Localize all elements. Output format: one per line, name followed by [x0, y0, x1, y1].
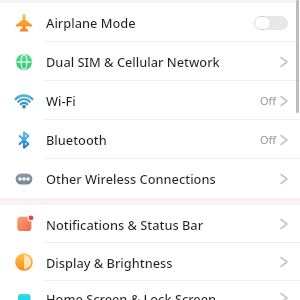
- staticText: Airplane Mode: [46, 14, 136, 31]
- button[interactable]: Notifications & Status Bar: [0, 205, 300, 243]
- button[interactable]: Home Screen & Lock Screen: [0, 279, 300, 300]
- button[interactable]: Display & Brightness: [0, 243, 300, 281]
- staticText: Bluetooth: [46, 131, 107, 148]
- staticText: Dual SIM & Cellular Network: [46, 53, 220, 70]
- staticText: Display & Brightness: [46, 254, 173, 271]
- button[interactable]: Dual SIM & Cellular Network: [0, 42, 300, 81]
- staticText: Other Wireless Connections: [46, 170, 216, 187]
- button[interactable]: Bluetooth: [0, 120, 300, 159]
- staticText: Home Screen & Lock Screen: [46, 290, 217, 300]
- staticText: Off: [260, 93, 277, 108]
- button[interactable]: Airplane Mode: [0, 3, 300, 42]
- button[interactable]: Wi-Fi: [0, 81, 300, 120]
- staticText: Off: [260, 132, 277, 147]
- staticText: Notifications & Status Bar: [46, 216, 204, 233]
- staticText: Wi-Fi: [46, 92, 76, 109]
- button[interactable]: Other Wireless Connections: [0, 159, 300, 198]
